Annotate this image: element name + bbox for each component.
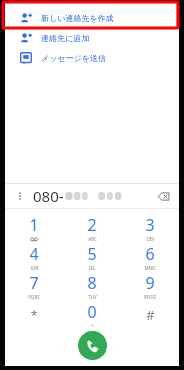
staticText: 0 — [87, 301, 97, 323]
button[interactable]: 1 — [5, 213, 63, 242]
staticText: 8 — [87, 272, 97, 294]
button[interactable]: 0 — [63, 300, 121, 329]
staticText: 080- — [33, 186, 64, 206]
button[interactable]: メッセージを送信 — [5, 48, 179, 68]
button[interactable]: More options — [13, 189, 27, 203]
button[interactable]: 6 — [121, 242, 179, 271]
staticText: # — [146, 306, 155, 324]
staticText: ABC — [88, 236, 97, 242]
button[interactable]: Call — [78, 331, 107, 360]
button[interactable]: 7 — [5, 271, 63, 300]
staticText: MNO — [144, 265, 156, 271]
staticText: * — [30, 306, 38, 324]
button[interactable]: 8 — [63, 271, 121, 300]
staticText: 2 — [87, 214, 97, 236]
staticText: 4 — [29, 243, 39, 265]
staticText: メッセージを送信 — [41, 53, 106, 63]
staticText: 9 — [145, 272, 155, 294]
staticText: 3 — [145, 214, 155, 236]
staticText: 7 — [29, 272, 39, 294]
staticText: 1 — [29, 214, 39, 236]
staticText: JKL — [89, 265, 96, 271]
staticText: + — [91, 323, 94, 329]
staticText: 5 — [87, 243, 97, 265]
staticText: PQRS — [28, 294, 40, 300]
button[interactable]: 新しい連絡先を作成 — [5, 8, 179, 28]
staticText: WXYZ — [144, 294, 156, 300]
button[interactable]: 5 — [63, 242, 121, 271]
button[interactable]: 4 — [5, 242, 63, 271]
button[interactable]: 2 — [63, 213, 121, 242]
button[interactable]: # — [121, 300, 179, 329]
staticText: TUV — [88, 294, 97, 300]
button[interactable]: * — [5, 300, 63, 329]
button[interactable]: 9 — [121, 271, 179, 300]
staticText: 6 — [145, 243, 155, 265]
staticText: DEF — [146, 236, 155, 242]
button[interactable]: 連絡先に追加 — [5, 28, 179, 48]
button[interactable]: 3 — [121, 213, 179, 242]
staticText: GHI — [30, 265, 39, 271]
button[interactable]: Backspace — [155, 188, 171, 204]
staticText: 新しい連絡先を作成 — [41, 13, 114, 23]
staticText: 連絡先に追加 — [41, 33, 90, 43]
